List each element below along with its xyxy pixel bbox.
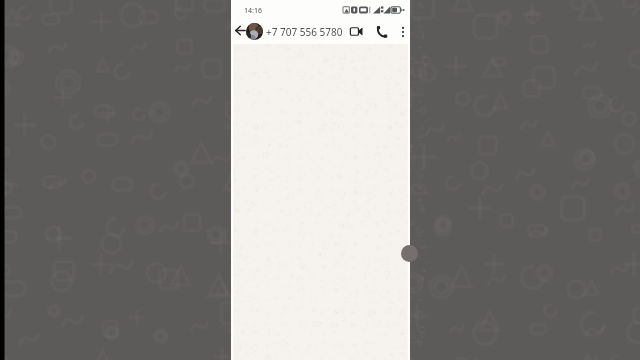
- button[interactable]: Video call: [347, 22, 366, 41]
- staticText: +7 707 556 5780: [266, 25, 343, 39]
- button[interactable]: Scroll to bottom: [401, 245, 418, 262]
- button[interactable]: Back: [233, 23, 248, 38]
- button[interactable]: More options: [393, 22, 412, 41]
- staticText: 14:16: [244, 6, 262, 16]
- button[interactable]: Voice call: [372, 22, 391, 41]
- button[interactable]: Contact photo: [246, 23, 263, 40]
